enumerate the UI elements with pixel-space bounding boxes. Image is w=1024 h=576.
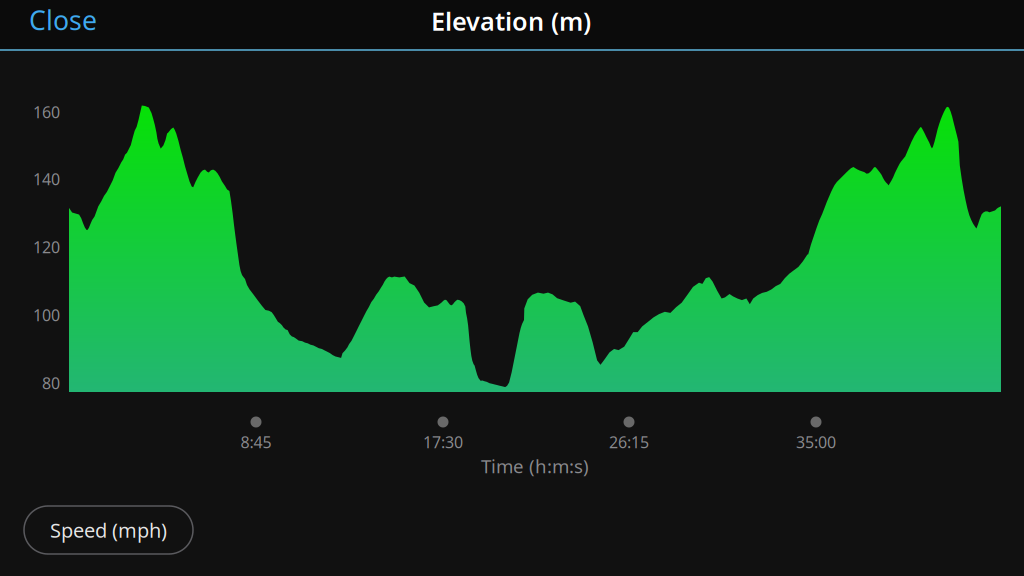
staticText: 80 [42, 372, 60, 394]
staticText: 100 [33, 304, 60, 326]
button[interactable]: Speed (mph) [24, 506, 193, 554]
staticText: 26:15 [609, 431, 649, 453]
staticText: Close [29, 2, 97, 38]
staticText: 17:30 [423, 431, 463, 453]
staticText: Elevation (m) [431, 4, 591, 38]
staticText: 35:00 [796, 431, 836, 453]
staticText: Time (h:m:s) [481, 454, 589, 478]
staticText: 160 [33, 101, 60, 123]
staticText: 140 [33, 168, 60, 190]
staticText: 8:45 [240, 431, 271, 453]
button[interactable]: Close [29, 4, 109, 36]
staticText: 120 [33, 236, 60, 258]
staticText: Speed (mph) [50, 517, 167, 543]
